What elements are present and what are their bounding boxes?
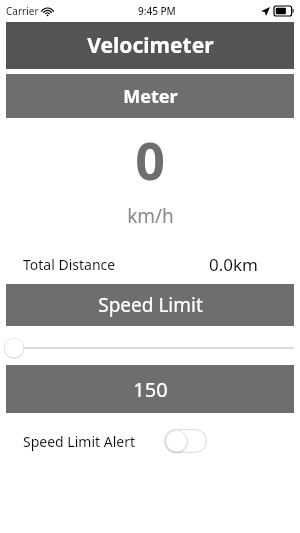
- staticText: Velocimeter: [87, 31, 214, 60]
- button[interactable]: Speed Limit Alert toggle: [164, 429, 207, 453]
- button[interactable]: Meter: [6, 74, 294, 118]
- button[interactable]: Speed Limit: [6, 284, 294, 326]
- button[interactable]: Velocimeter: [6, 22, 294, 69]
- staticText: 150: [133, 376, 168, 403]
- staticText: Speed Limit: [98, 292, 203, 318]
- staticText: Total Distance: [23, 255, 116, 274]
- staticText: 9:45 PM: [138, 4, 176, 18]
- button[interactable]: 150: [6, 365, 294, 413]
- staticText: Meter: [123, 84, 178, 109]
- staticText: Speed Limit Alert: [23, 432, 135, 451]
- staticText: 0: [135, 124, 165, 195]
- staticText: km/h: [127, 203, 174, 229]
- button[interactable]: Speed limit slider: [0, 335, 300, 361]
- staticText: Carrier: [6, 4, 39, 18]
- staticText: 0.0km: [209, 253, 258, 276]
